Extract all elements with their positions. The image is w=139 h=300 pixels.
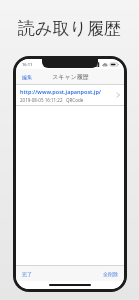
staticText: 全削除	[103, 271, 118, 277]
button[interactable]: 全削除	[100, 269, 121, 279]
staticText: スキャン履歴	[52, 73, 89, 81]
staticText: 2019-08-05 16:11:22 QRCode	[20, 97, 84, 103]
button[interactable]: 完了	[19, 269, 35, 279]
staticText: 編集	[22, 74, 32, 80]
staticText: http://www.post.japanpost.jp/	[20, 88, 102, 95]
staticText: 16:11	[22, 62, 33, 67]
staticText: 完了	[22, 271, 32, 277]
button[interactable]: http://www.post.japanpost.jp/	[16, 85, 124, 105]
button[interactable]: 編集	[19, 72, 35, 82]
staticText: 読み取り履歴	[18, 18, 121, 39]
